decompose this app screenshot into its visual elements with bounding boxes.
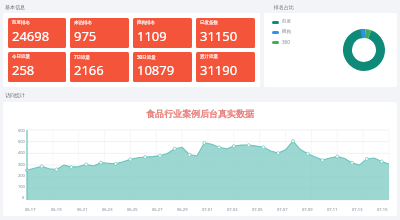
staticText: 360 — [282, 39, 290, 45]
staticText: 07-09 — [302, 207, 313, 212]
staticText: 基本信息 — [5, 4, 25, 10]
staticText: 30日流量 — [137, 54, 156, 60]
staticText: 7日流量 — [74, 54, 91, 60]
staticText: 31150 — [200, 27, 238, 45]
staticText: 来访排名 — [74, 20, 92, 26]
staticText: 07-15 — [377, 207, 388, 212]
staticText: 06-21 — [77, 207, 88, 212]
staticText: 1109 — [137, 27, 167, 45]
button[interactable]: 30日流量 — [133, 52, 192, 82]
staticText: 100 — [18, 184, 25, 189]
staticText: 31190 — [200, 61, 238, 79]
button[interactable]: 7日流量 — [70, 52, 129, 82]
staticText: 200 — [18, 173, 25, 178]
staticText: 2166 — [74, 61, 104, 79]
other: 排名占比环形图 — [343, 29, 385, 71]
staticText: 0 — [22, 195, 25, 200]
staticText: 已发条数 — [200, 20, 218, 26]
button[interactable]: 百度排名 — [8, 18, 66, 48]
staticText: 258 — [12, 61, 35, 79]
staticText: 排名占比 — [274, 4, 294, 10]
staticText: 累计流量 — [200, 54, 218, 60]
staticText: 975 — [74, 27, 97, 45]
staticText: 今日流量 — [12, 54, 30, 60]
staticText: 06-19 — [51, 207, 62, 212]
staticText: 食品行业案例后台真实数据 — [146, 108, 254, 119]
button[interactable]: 百度 — [272, 19, 291, 25]
staticText: 07-03 — [227, 207, 238, 212]
button[interactable]: 今日流量 — [8, 52, 66, 82]
button[interactable]: 累计流量 — [196, 52, 255, 82]
staticText: 06-29 — [177, 207, 188, 212]
button[interactable]: 360 — [272, 39, 290, 45]
staticText: 07-05 — [252, 207, 263, 212]
staticText: 07-13 — [352, 207, 363, 212]
staticText: 06-25 — [127, 207, 138, 212]
staticText: 600 — [18, 128, 25, 133]
staticText: 400 — [18, 150, 25, 155]
staticText: 百度 — [282, 19, 291, 25]
staticText: 07-07 — [277, 207, 288, 212]
staticText: 24698 — [12, 27, 50, 45]
button[interactable]: 已发条数 — [196, 18, 255, 48]
staticText: 访问统计 — [5, 92, 25, 98]
staticText: 搜狗 — [282, 29, 291, 35]
staticText: 07-01 — [202, 207, 213, 212]
staticText: 06-27 — [152, 207, 163, 212]
button[interactable]: 搜狗 — [272, 29, 291, 35]
staticText: 300 — [18, 162, 25, 167]
staticText: 07-11 — [327, 207, 338, 212]
staticText: 06-17 — [25, 207, 36, 212]
button[interactable]: 来访排名 — [70, 18, 129, 48]
staticText: 10879 — [137, 61, 175, 79]
staticText: 搜狗排名 — [137, 20, 155, 26]
staticText: 百度排名 — [12, 20, 30, 26]
staticText: 500 — [18, 139, 25, 144]
staticText: 06-23 — [102, 207, 113, 212]
button[interactable]: 搜狗排名 — [133, 18, 192, 48]
